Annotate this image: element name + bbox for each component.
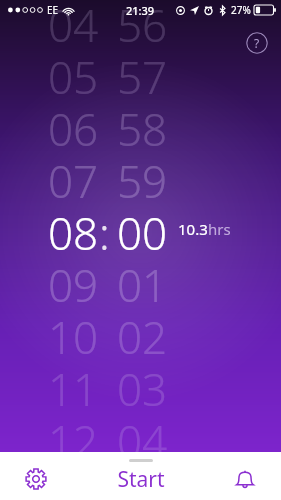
button[interactable]: 12	[0, 411, 281, 463]
button[interactable]: 10	[0, 307, 281, 359]
staticText: 05	[48, 47, 99, 99]
button[interactable]: 06	[0, 99, 281, 151]
staticText: 08	[48, 203, 99, 255]
button[interactable]: Settings	[0, 452, 72, 500]
button[interactable]: Alarm	[209, 452, 281, 500]
staticText: 21:39	[126, 3, 155, 18]
button[interactable]: 07	[0, 151, 281, 203]
staticText: 57	[117, 47, 168, 99]
staticText: 01	[117, 255, 168, 307]
button[interactable]: Help	[246, 32, 268, 54]
staticText: EE	[47, 3, 59, 17]
staticText: 27%	[231, 3, 251, 17]
staticText: 07	[48, 151, 99, 203]
staticText: 58	[117, 99, 168, 151]
staticText: Start	[117, 465, 165, 494]
staticText: 09	[48, 255, 99, 307]
button[interactable]: 11	[0, 359, 281, 411]
staticText: 11	[48, 359, 99, 411]
staticText: 06	[48, 99, 99, 151]
button[interactable]: Start	[72, 452, 209, 500]
staticText: ?	[254, 35, 260, 51]
button[interactable]: 08	[0, 203, 281, 255]
staticText: :	[99, 203, 109, 255]
staticText: 04	[48, 0, 99, 47]
staticText: 12	[48, 411, 99, 463]
staticText: 10.3	[178, 219, 208, 239]
button[interactable]: 04	[0, 0, 281, 47]
button[interactable]: 05	[0, 47, 281, 99]
staticText: 10	[48, 307, 99, 359]
staticText: hrs	[208, 219, 231, 239]
staticText: 56	[117, 0, 168, 47]
staticText: 03	[117, 359, 168, 411]
staticText: 02	[117, 307, 168, 359]
button[interactable]: 09	[0, 255, 281, 307]
staticText: 00	[117, 203, 168, 255]
staticText: 04	[117, 411, 168, 463]
staticText: 59	[117, 151, 168, 203]
